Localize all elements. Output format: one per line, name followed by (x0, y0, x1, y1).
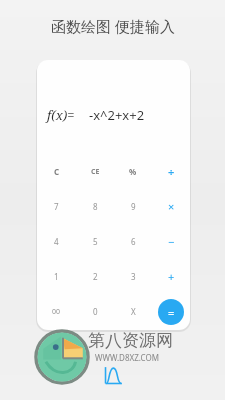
button[interactable]: 6 (114, 224, 152, 259)
button[interactable]: 2 (76, 259, 114, 294)
button[interactable]: Equals (152, 294, 190, 329)
staticText: 3 (131, 271, 136, 282)
button[interactable]: 8 (76, 189, 114, 224)
button[interactable]: 3 (114, 259, 152, 294)
staticText: 第八资源网 (88, 330, 173, 351)
staticText: 6 (131, 236, 136, 247)
staticText: + (168, 269, 175, 284)
staticText: = (168, 305, 175, 320)
button[interactable]: % (114, 154, 152, 189)
staticText: C (54, 166, 60, 177)
staticText: CE (91, 167, 100, 177)
staticText: f(x)= (47, 106, 75, 124)
staticText: % (129, 166, 137, 177)
other: Graph (102, 365, 124, 387)
staticText: 00 (52, 307, 61, 317)
button[interactable]: 00 (37, 294, 76, 329)
button[interactable]: × (152, 189, 190, 224)
staticText: -x^2+x+2 (89, 106, 145, 124)
button[interactable]: 4 (37, 224, 76, 259)
button[interactable]: 5 (76, 224, 114, 259)
button[interactable]: C (37, 154, 76, 189)
button[interactable]: ÷ (152, 154, 190, 189)
staticText: 5 (93, 236, 98, 247)
staticText: 7 (54, 201, 59, 212)
staticText: 4 (54, 236, 59, 247)
staticText: 0 (93, 306, 98, 317)
staticText: 函数绘图 便捷输入 (51, 16, 175, 36)
staticText: × (168, 199, 175, 214)
staticText: ÷ (168, 164, 175, 179)
button[interactable]: 1 (37, 259, 76, 294)
button[interactable]: X (114, 294, 152, 329)
button[interactable]: 7 (37, 189, 76, 224)
button[interactable]: − (152, 224, 190, 259)
staticText: − (168, 234, 175, 249)
staticText: X (131, 306, 136, 317)
other: Equals (158, 299, 184, 325)
button[interactable]: CE (76, 154, 114, 189)
staticText: 2 (93, 271, 98, 282)
staticText: 9 (131, 201, 136, 212)
button[interactable]: 9 (114, 189, 152, 224)
staticText: 1 (54, 271, 59, 282)
button[interactable]: + (152, 259, 190, 294)
staticText: 8 (93, 201, 98, 212)
staticText: WWW.D8XZ.COM (95, 352, 159, 363)
button[interactable]: 0 (76, 294, 114, 329)
